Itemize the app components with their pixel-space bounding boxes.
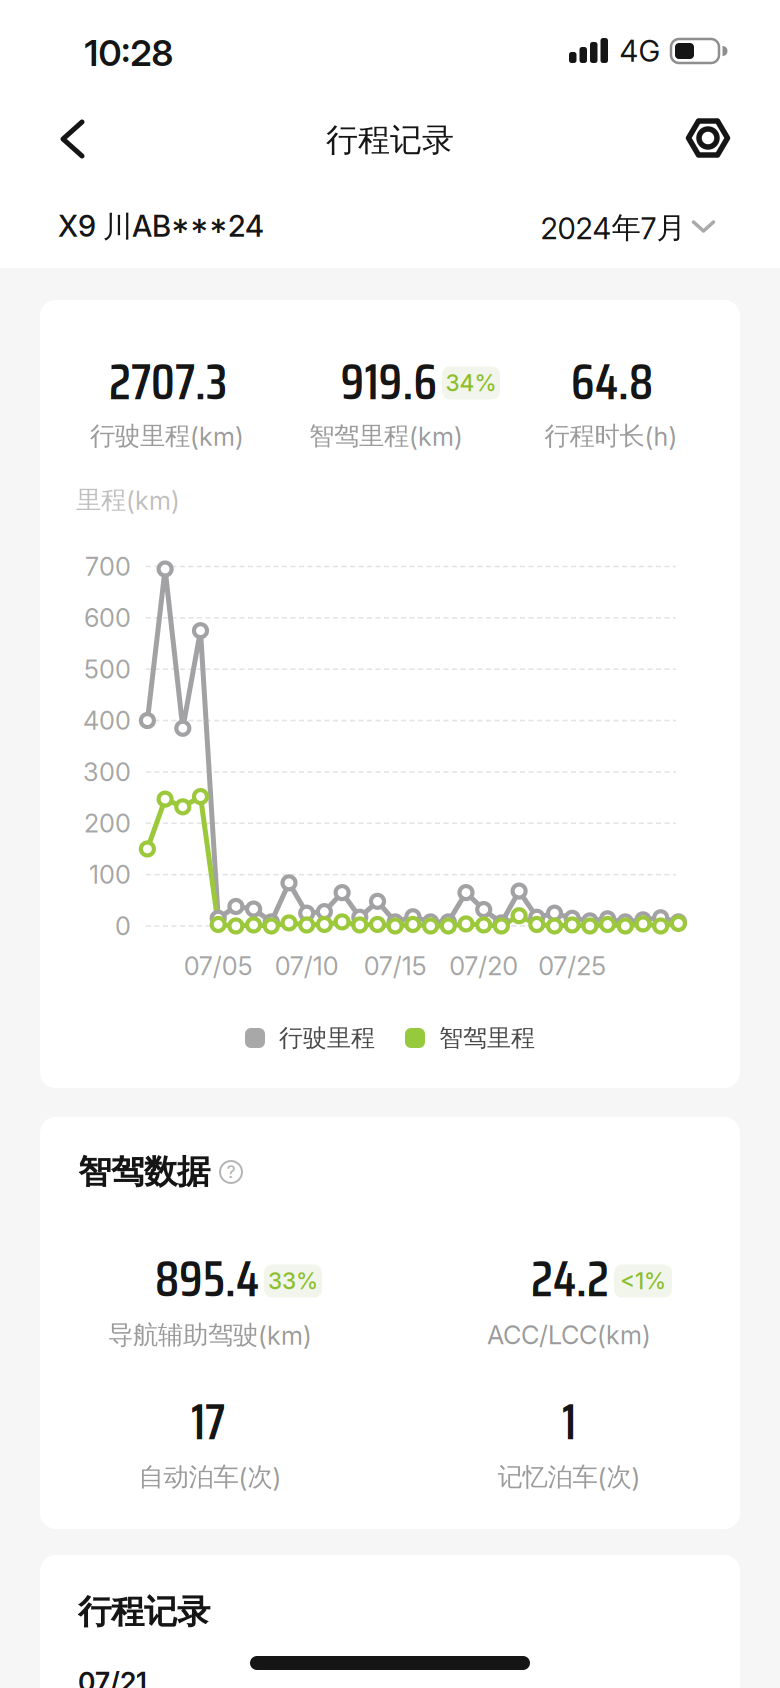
staticText: 智驾里程(km) (309, 420, 463, 451)
staticText: 4G (619, 34, 660, 68)
staticText: 895.4 (155, 1240, 259, 1318)
staticText: 记忆泊车(次) (497, 1461, 640, 1492)
staticText: <1% (620, 1268, 666, 1294)
staticText: 0 (115, 911, 131, 941)
staticText: 行驶里程(km) (90, 420, 244, 451)
staticText: 17 (191, 1383, 225, 1461)
staticText: 100 (89, 860, 131, 890)
staticText: ? (226, 1162, 235, 1182)
button[interactable]: X9 川AB***24 (58, 197, 358, 257)
staticText: 34% (445, 370, 496, 396)
staticText: 2024年7月 (540, 210, 685, 246)
staticText: X9 川AB***24 (58, 209, 264, 245)
staticText: 智驾里程 (439, 1023, 535, 1053)
staticText: 400 (83, 706, 131, 735)
staticText: 行程时长(h) (544, 420, 677, 451)
staticText: 行驶里程 (279, 1023, 375, 1053)
staticText: 里程(km) (76, 484, 180, 515)
staticText: 07/20 (449, 951, 518, 981)
button[interactable] (51, 117, 95, 161)
staticText: 500 (84, 654, 131, 684)
staticText: 智驾数据 (78, 1151, 210, 1192)
button[interactable]: ? (220, 1161, 242, 1183)
staticText: 300 (83, 757, 131, 787)
staticText: 行程记录 (78, 1591, 210, 1632)
staticText: 919.6 (340, 343, 437, 421)
staticText: 自动泊车(次) (138, 1461, 281, 1492)
staticText: 700 (85, 551, 131, 581)
staticText: ACC/LCC(km) (487, 1320, 651, 1350)
staticText: 行程记录 (326, 120, 454, 160)
staticText: 07/25 (538, 951, 606, 981)
staticText: 07/15 (364, 951, 427, 981)
staticText: 10:28 (84, 31, 173, 75)
staticText: 33% (268, 1268, 318, 1294)
staticText: 24.2 (531, 1240, 609, 1318)
button[interactable] (682, 114, 734, 162)
button[interactable]: 2024年7月 (540, 198, 715, 258)
staticText: 1 (562, 1383, 576, 1461)
staticText: 07/10 (275, 951, 339, 981)
staticText: 2707.3 (109, 343, 227, 421)
staticText: 07/21 (78, 1666, 147, 1688)
staticText: 07/05 (184, 951, 253, 981)
staticText: 64.8 (571, 343, 653, 421)
staticText: 600 (84, 603, 131, 633)
staticText: 200 (84, 808, 131, 838)
staticText: 导航辅助驾驶(km) (108, 1319, 312, 1350)
